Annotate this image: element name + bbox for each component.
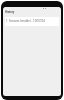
button[interactable]: History [3, 8, 61, 15]
staticText: 1. Sensors (enable) - 10/07/24 [6, 19, 45, 23]
button[interactable]: 1. Sensors (enable) - 10/07/24 [5, 17, 59, 26]
other: Status icons [43, 8, 46, 9]
staticText: History [5, 10, 15, 13]
